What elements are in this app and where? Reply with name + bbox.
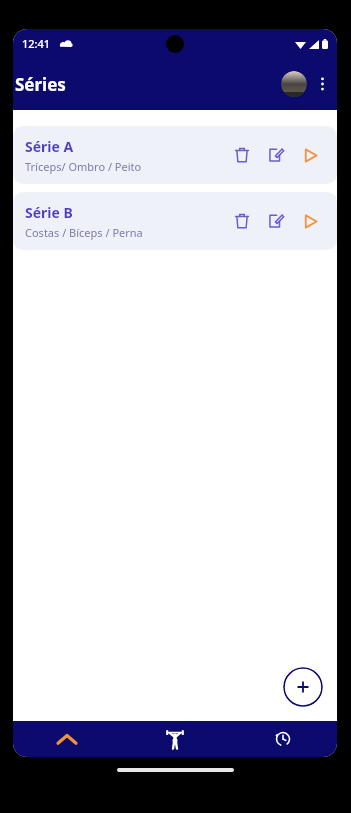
button[interactable]: Delete	[225, 204, 259, 238]
button[interactable]: Edit	[259, 138, 293, 172]
button[interactable]: More options	[311, 73, 333, 95]
staticText: 12:41	[22, 36, 51, 51]
button[interactable]: Start	[293, 138, 327, 172]
button[interactable]: Série B	[13, 192, 337, 250]
button[interactable]: Profile	[281, 71, 307, 97]
button[interactable]: Delete	[225, 138, 259, 172]
button[interactable]: Start	[293, 204, 327, 238]
staticText: Série B	[25, 203, 73, 222]
button[interactable]: Workouts	[121, 721, 229, 757]
button[interactable]: Edit	[259, 204, 293, 238]
button[interactable]: Add series	[283, 667, 323, 707]
staticText: Séries	[15, 73, 66, 96]
button[interactable]: History	[229, 721, 337, 757]
button[interactable]: Home	[13, 721, 121, 757]
button[interactable]: Série A	[13, 126, 337, 184]
staticText: Série A	[25, 137, 74, 156]
staticText: Tríceps/ Ombro / Peito	[25, 159, 142, 174]
staticText: Costas / Bíceps / Perna	[25, 225, 143, 240]
